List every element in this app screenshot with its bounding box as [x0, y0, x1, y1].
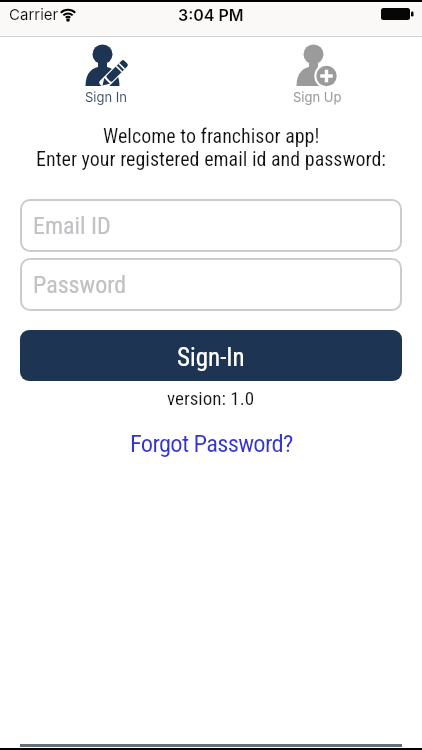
- staticText: Password: [33, 271, 127, 299]
- staticText: Carrier: [9, 5, 59, 23]
- staticText: version: 1.0: [167, 387, 255, 409]
- staticText: Sign In: [85, 89, 127, 105]
- button[interactable]: Forgot Password?: [130, 429, 293, 458]
- staticText: Sign Up: [293, 89, 342, 105]
- button[interactable]: Password: [20, 258, 402, 311]
- staticText: 3:04 PM: [178, 5, 244, 24]
- staticText: Welcome to franchisor app!: [103, 124, 320, 147]
- button[interactable]: Sign In: [56, 42, 156, 105]
- button[interactable]: Sign Up: [267, 42, 367, 105]
- button[interactable]: Email ID: [20, 199, 402, 252]
- staticText: Enter your registered email id and passw…: [36, 147, 387, 170]
- button[interactable]: Sign-In: [20, 330, 402, 381]
- staticText: Sign-In: [177, 343, 245, 372]
- staticText: Email ID: [33, 212, 111, 240]
